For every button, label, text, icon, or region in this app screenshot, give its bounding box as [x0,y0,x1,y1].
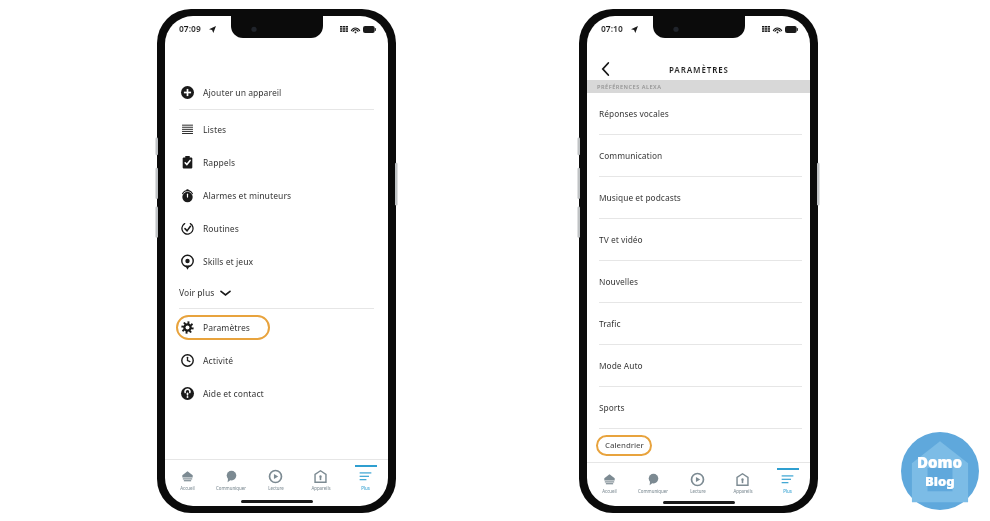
staticText: 07:09 [179,23,201,35]
staticText: PRÉFÉRENCES ALEXA [597,83,662,91]
staticText: Routines [203,223,239,235]
staticText: Rappels [203,157,236,169]
staticText: Communiquer [216,485,246,491]
button[interactable]: Calendrier [596,435,652,456]
staticText: Alarmes et minuteurs [203,190,292,202]
staticText: Skills et jeux [203,256,254,268]
staticText: Accueil [180,485,195,491]
button[interactable]: Musique et podcasts [587,177,810,219]
button[interactable]: Communication [587,135,810,177]
button[interactable]: Communiquer [631,463,675,499]
button[interactable]: Réponses vocales [587,93,810,135]
staticText: Listes [203,124,227,136]
staticText: Musique et podcasts [599,192,681,203]
button[interactable]: TV et vidéo [587,219,810,261]
staticText: PARAMÈTRES [669,64,729,75]
staticText: Lecture [690,488,706,494]
button[interactable]: Retour [595,59,615,79]
button[interactable]: Trafic [587,303,810,345]
staticText: Calendrier [605,440,644,451]
staticText: Réponses vocales [599,108,669,119]
button[interactable]: Accueil [587,463,631,499]
staticText: Ajouter un appareil [203,87,282,99]
staticText: Sports [599,402,625,413]
staticText: Mode Auto [599,360,643,371]
button[interactable]: Plus [765,463,810,499]
staticText: Blog [925,472,955,490]
staticText: Domo [917,452,963,472]
button[interactable]: Communiquer [209,460,253,496]
staticText: Lecture [268,485,284,491]
button[interactable]: Listes [165,113,388,146]
button[interactable]: Appareils [298,460,343,496]
button[interactable]: Plus [343,460,388,496]
staticText: Plus [783,488,792,494]
staticText: Voir plus [179,287,215,299]
button[interactable]: Voir plus [165,278,388,308]
button[interactable]: Nouvelles [587,261,810,303]
staticText: Appareils [733,488,753,494]
button[interactable]: Routines [165,212,388,245]
button[interactable]: Sports [587,387,810,429]
button[interactable]: Accueil [165,460,209,496]
button[interactable]: Aide et contact [165,377,388,410]
button[interactable]: Alarmes et minuteurs [165,179,388,212]
button[interactable]: Ajouter un appareil [165,76,388,109]
staticText: Appareils [311,485,331,491]
staticText: Communiquer [638,488,668,494]
button[interactable]: Paramètres [176,315,270,340]
button[interactable]: Activité [165,344,388,377]
button[interactable]: Rappels [165,146,388,179]
button[interactable]: Lecture [253,460,298,496]
staticText: Aide et contact [203,388,264,400]
staticText: TV et vidéo [599,234,643,245]
staticText: Nouvelles [599,276,639,287]
staticText: Trafic [599,318,621,329]
button[interactable]: Mode Auto [587,345,810,387]
staticText: Paramètres [203,322,250,334]
staticText: Communication [599,150,663,161]
button[interactable]: Lecture [675,463,720,499]
button[interactable]: Appareils [720,463,765,499]
staticText: Plus [361,485,370,491]
staticText: Activité [203,355,234,367]
staticText: 07:10 [601,23,623,35]
staticText: Accueil [602,488,617,494]
button[interactable]: Skills et jeux [165,245,388,278]
